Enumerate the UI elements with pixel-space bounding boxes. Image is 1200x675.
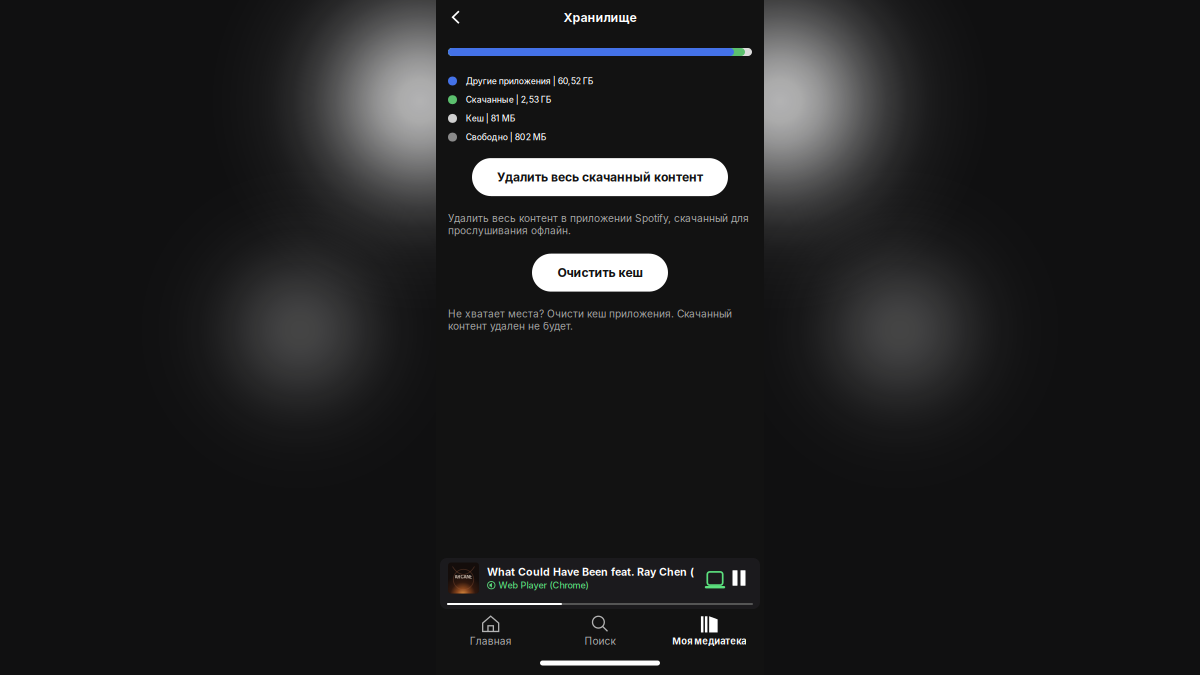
staticText: Не хватает места? Очисти кеш приложения.…: [448, 308, 732, 332]
staticText: Удалить весь скачанный контент: [497, 170, 703, 184]
staticText: Удалить весь контент в приложении Spotif…: [448, 212, 749, 237]
staticText: Web Player (Chrome): [499, 580, 589, 591]
staticText: Другие приложения | 60,52 ГБ: [466, 76, 594, 86]
staticText: Поиск: [584, 635, 615, 647]
button[interactable]: Главная: [436, 614, 545, 648]
button[interactable]: Back: [442, 3, 470, 31]
staticText: Кеш | 81 МБ: [466, 113, 516, 124]
staticText: Хранилище: [563, 10, 636, 25]
staticText: ARCANE: [454, 574, 472, 580]
button[interactable]: Connect to a device: [703, 563, 727, 593]
button[interactable]: Поиск: [545, 614, 655, 648]
staticText: What Could Have Been feat. Ray Chen (: [487, 565, 694, 578]
button[interactable]: Pause: [727, 563, 751, 593]
button[interactable]: Удалить весь скачанный контент: [472, 158, 728, 196]
staticText: Моя медиатека: [672, 635, 746, 647]
button[interactable]: Очистить кеш: [532, 254, 668, 292]
button[interactable]: Моя медиатека: [655, 614, 764, 648]
staticText: Скачанные | 2,53 ГБ: [466, 94, 552, 105]
staticText: Свободно | 802 МБ: [466, 132, 547, 142]
staticText: Очистить кеш: [557, 265, 642, 280]
staticText: Главная: [470, 635, 512, 647]
